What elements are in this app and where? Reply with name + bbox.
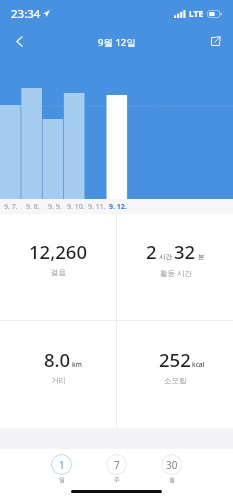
staticText: LTE [189,8,204,20]
button[interactable]: 12,260 [0,214,116,320]
staticText: 8.0 [44,347,71,372]
staticText: 분 [198,253,205,261]
staticText: 걸음 [51,268,66,277]
staticText: 소모됨 [164,376,187,385]
staticText: 252 [159,347,191,372]
staticText: 12,260 [29,239,87,264]
button[interactable]: 9. 7. [0,199,22,214]
button[interactable]: 9. 9. [44,199,65,214]
staticText: kcal [192,360,205,369]
button[interactable]: 9. 8. [22,199,44,214]
staticText: 23:34 [11,6,41,22]
staticText: 9. 11. [88,202,106,212]
staticText: 9. 9. [48,202,62,212]
button[interactable]: 9. 10. [65,199,86,214]
staticText: 30 [166,458,178,472]
button[interactable]: 9. 11. [86,199,107,214]
staticText: 거리 [51,376,66,385]
staticText: 1 [59,458,65,472]
staticText: 2 [146,239,157,264]
button[interactable]: 1 [51,454,72,484]
staticText: 9. 7. [4,202,18,212]
staticText: 9. 10. [67,202,85,212]
button[interactable]: Share [201,27,229,55]
staticText: 활동 시간 [160,268,192,278]
staticText: 시간 [159,253,172,261]
button[interactable]: 7 [106,454,127,484]
button[interactable]: 9. 12. [107,199,128,214]
staticText: 9. 8. [26,202,40,212]
staticText: 일 [59,476,65,484]
button[interactable]: 2 [117,214,233,320]
button[interactable]: 30 [161,454,182,484]
staticText: 9월 12일 [98,36,136,49]
button[interactable]: 252 [117,321,233,428]
button[interactable]: 8.0 [0,321,116,428]
staticText: 7 [114,458,120,472]
button[interactable]: Back [4,26,34,56]
staticText: 월 [169,476,175,484]
staticText: km [72,360,82,369]
staticText: 주 [114,476,120,484]
staticText: 32 [174,239,196,264]
staticText: 9. 12. [109,202,127,212]
